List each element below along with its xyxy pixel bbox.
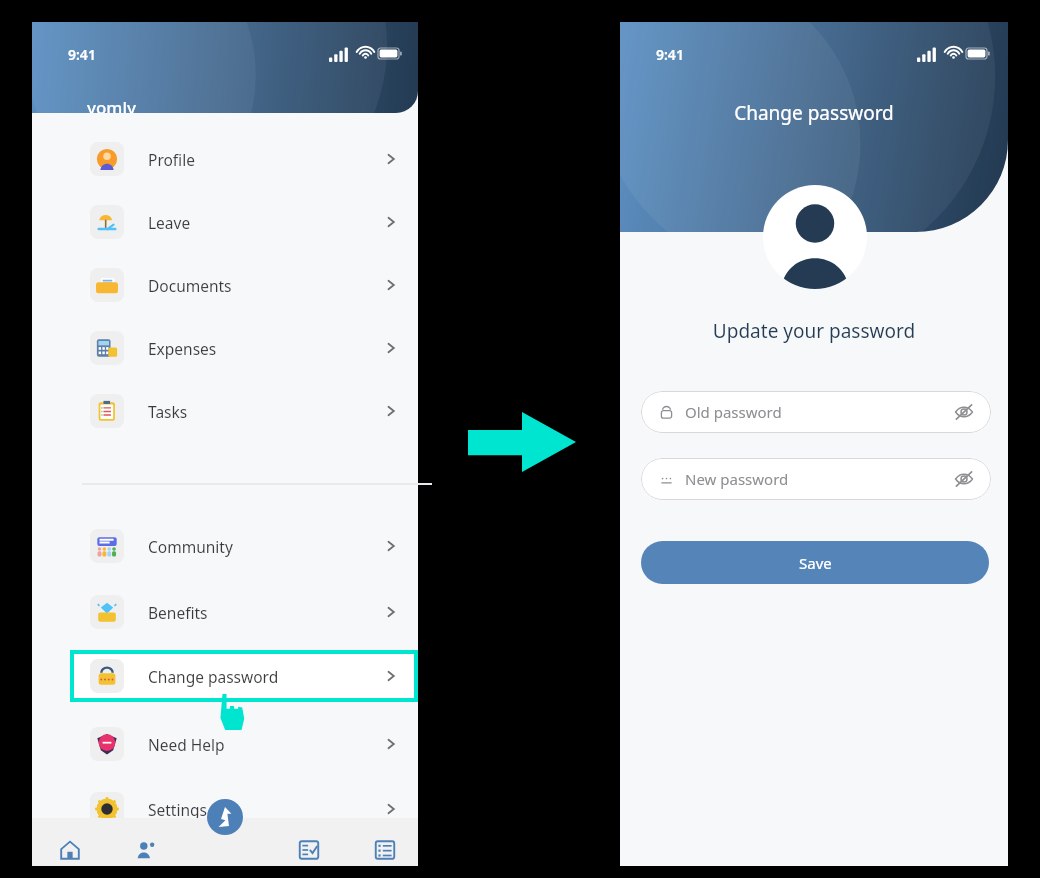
staticText: Community — [148, 536, 233, 557]
staticText: Settings — [148, 799, 207, 820]
button[interactable]: Tasks — [32, 385, 418, 437]
button[interactable]: Save — [641, 541, 989, 584]
button[interactable]: Community — [32, 520, 418, 572]
button[interactable]: Settings — [32, 783, 418, 835]
button[interactable]: Leave — [32, 196, 418, 248]
staticText: Change password — [620, 100, 1008, 126]
staticText: Benefits — [148, 602, 208, 623]
staticText: New password — [685, 469, 789, 489]
button[interactable]: More — [361, 826, 409, 874]
button[interactable]: Tasks — [285, 826, 333, 874]
staticText: Update your password — [620, 318, 1008, 344]
button[interactable]: People — [122, 826, 170, 874]
button[interactable]: Documents — [32, 259, 418, 311]
staticText: 9:41 — [68, 45, 96, 64]
button[interactable]: Need Help — [32, 718, 418, 770]
staticText: Leave — [148, 212, 191, 233]
button[interactable]: Profile — [32, 133, 418, 185]
staticText: Tasks — [148, 401, 188, 422]
button[interactable]: Expenses — [32, 322, 418, 374]
button[interactable]: Show password — [953, 401, 975, 423]
staticText: Save — [799, 553, 832, 573]
staticText: Documents — [148, 275, 232, 296]
staticText: Need Help — [148, 734, 225, 755]
button[interactable]: Benefits — [32, 586, 418, 638]
staticText: Expenses — [148, 338, 217, 359]
button[interactable]: Quick action — [207, 799, 243, 835]
staticText: yomly — [87, 96, 137, 113]
staticText: Change password — [148, 666, 279, 687]
button[interactable]: New password — [659, 458, 975, 500]
staticText: Old password — [685, 402, 782, 422]
button[interactable]: Show password — [953, 468, 975, 490]
staticText: 9:41 — [656, 45, 684, 64]
button[interactable]: Change password — [70, 650, 418, 702]
staticText: Profile — [148, 149, 195, 170]
button[interactable]: Home — [46, 826, 94, 874]
button[interactable]: Old password — [659, 391, 975, 433]
